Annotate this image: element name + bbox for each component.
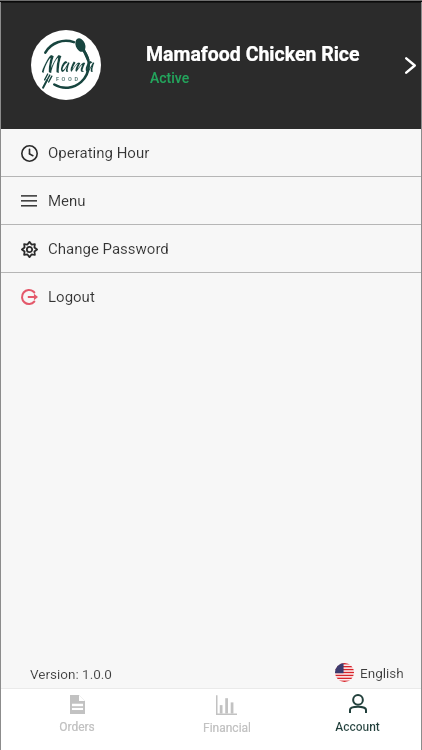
staticText: Logout	[48, 288, 95, 306]
staticText: Operating Hour	[48, 144, 150, 162]
button[interactable]: Orders	[0, 689, 140, 750]
staticText: Active	[150, 70, 190, 86]
staticText: Version: 1.0.0	[30, 666, 112, 682]
staticText: Menu	[48, 192, 86, 210]
button[interactable]: Open store details	[398, 53, 422, 77]
button[interactable]: Menu	[0, 177, 422, 224]
button[interactable]: Account	[281, 689, 422, 750]
staticText: Change Password	[48, 240, 169, 258]
staticText: English	[360, 665, 404, 681]
staticText: Mama	[41, 49, 94, 78]
button[interactable]: Operating Hour	[0, 129, 422, 176]
button[interactable]: English	[335, 663, 404, 682]
staticText: Financial	[203, 721, 251, 735]
button[interactable]: Logout	[0, 273, 422, 320]
staticText: Orders	[59, 720, 95, 734]
staticText: FOOD	[56, 76, 81, 82]
staticText: Mamafood Chicken Rice	[146, 43, 360, 66]
button[interactable]: Change Password	[0, 225, 422, 272]
button[interactable]: Financial	[140, 689, 281, 750]
button[interactable]: Mama	[0, 0, 422, 129]
staticText: Account	[335, 720, 380, 734]
